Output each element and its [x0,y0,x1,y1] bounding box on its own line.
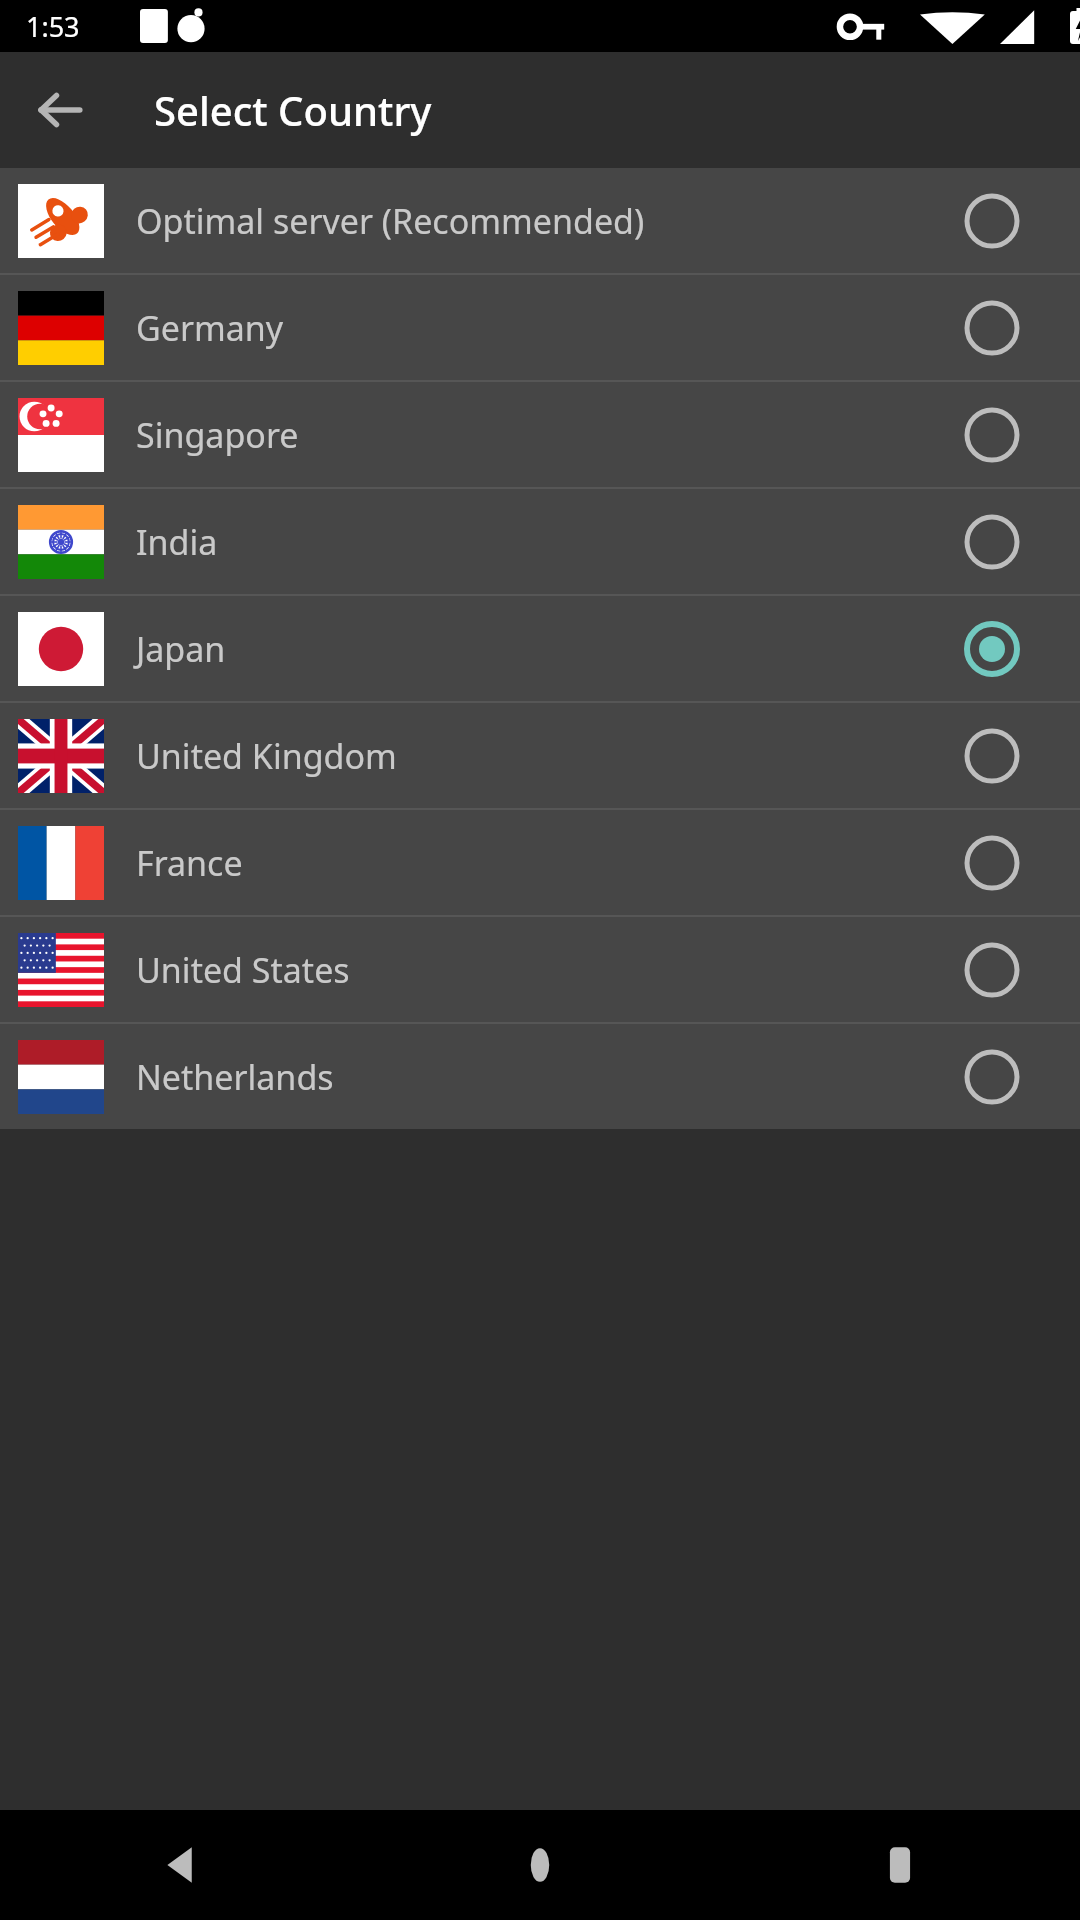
button[interactable]: Back [20,70,100,150]
button[interactable] [942,492,1042,592]
staticText: Netherlands [136,1054,334,1100]
staticText: Optimal server (Recommended) [136,198,645,244]
button[interactable] [942,706,1042,806]
button[interactable] [942,599,1042,699]
button[interactable] [942,278,1042,378]
button[interactable]: Japan [0,596,1080,701]
staticText: 1:53 [26,8,80,45]
button[interactable]: India [0,489,1080,594]
staticText: France [136,840,243,886]
staticText: United States [136,947,350,993]
staticText: Singapore [136,412,299,458]
button[interactable] [942,385,1042,485]
button[interactable]: Recent apps [720,1810,1080,1920]
button[interactable]: Germany [0,275,1080,380]
button[interactable]: Back [0,1810,360,1920]
staticText: Germany [136,305,284,351]
button[interactable] [942,813,1042,913]
button[interactable]: France [0,810,1080,915]
staticText: India [136,519,218,565]
staticText: Japan [136,626,226,672]
button[interactable]: United States [0,917,1080,1022]
staticText: United Kingdom [136,733,397,779]
staticText: Select Country [154,83,432,137]
button[interactable]: Home [360,1810,720,1920]
button[interactable]: Netherlands [0,1024,1080,1129]
button[interactable]: Optimal server (Recommended) [0,168,1080,273]
button[interactable]: United Kingdom [0,703,1080,808]
button[interactable] [942,1027,1042,1127]
button[interactable] [942,920,1042,1020]
button[interactable]: Singapore [0,382,1080,487]
button[interactable] [942,171,1042,271]
